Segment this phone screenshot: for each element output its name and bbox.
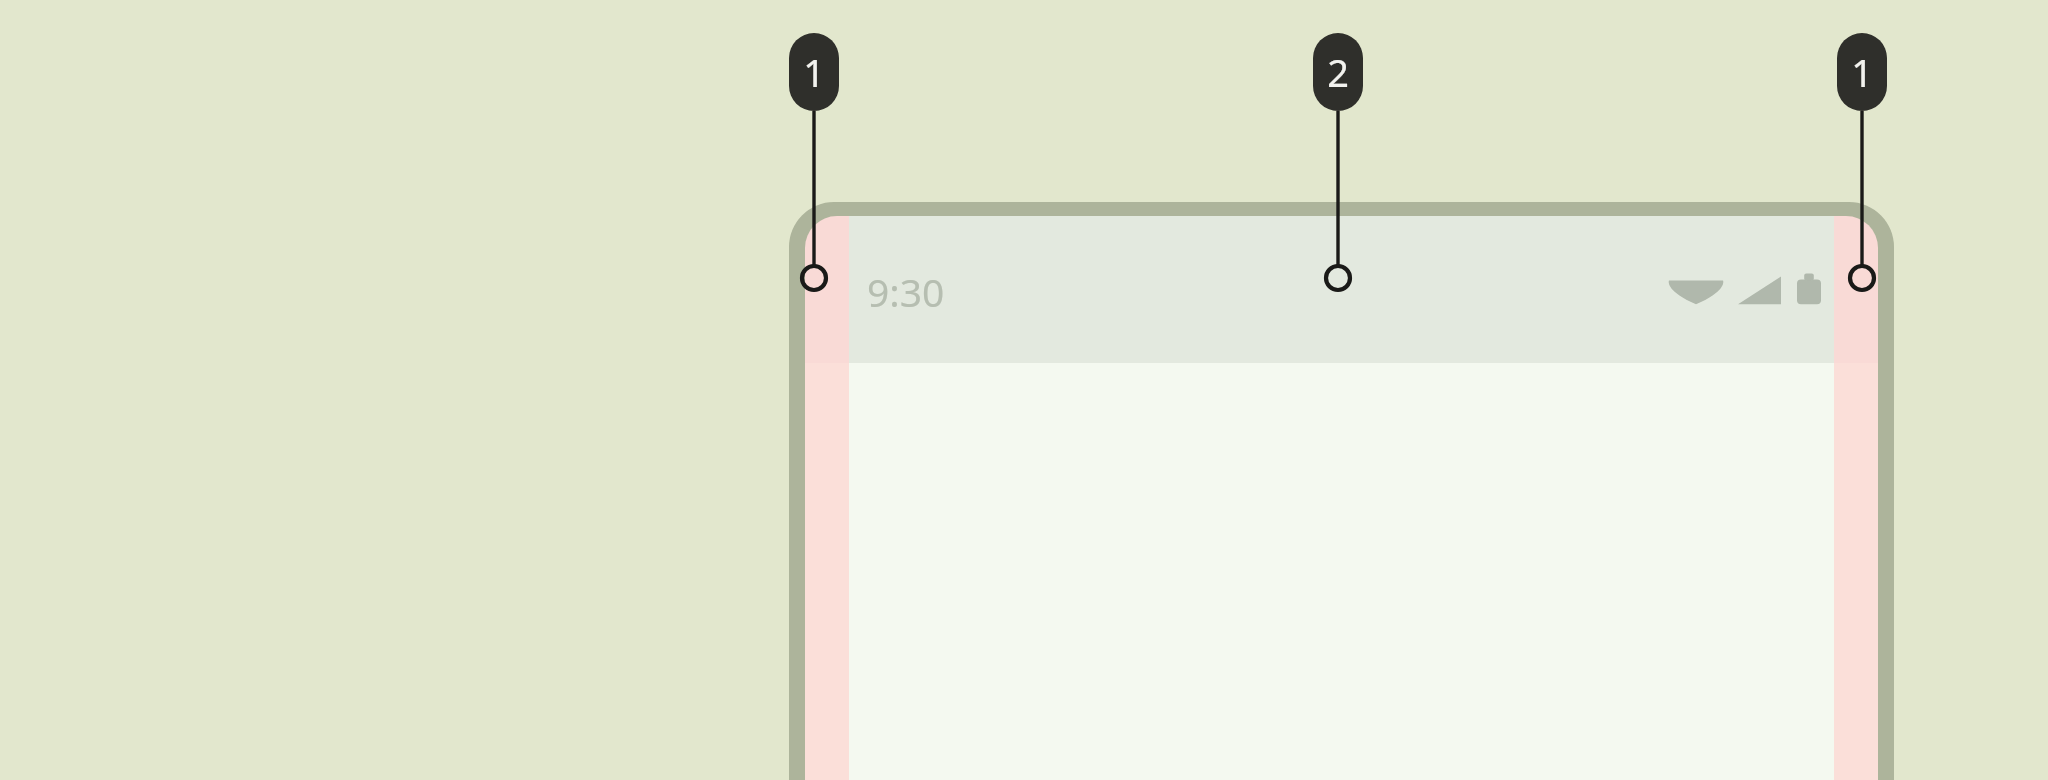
button[interactable]: Annotation 1: [789, 33, 839, 111]
staticText: 1: [803, 46, 825, 98]
button[interactable]: Annotation 2: [1313, 33, 1363, 111]
other: Wi-Fi, signal and battery status: [1672, 269, 1814, 313]
staticText: 1: [1851, 46, 1873, 98]
button[interactable]: Annotation 1: [1837, 33, 1887, 111]
staticText: 9:30: [867, 265, 945, 318]
staticText: 2: [1327, 46, 1349, 98]
